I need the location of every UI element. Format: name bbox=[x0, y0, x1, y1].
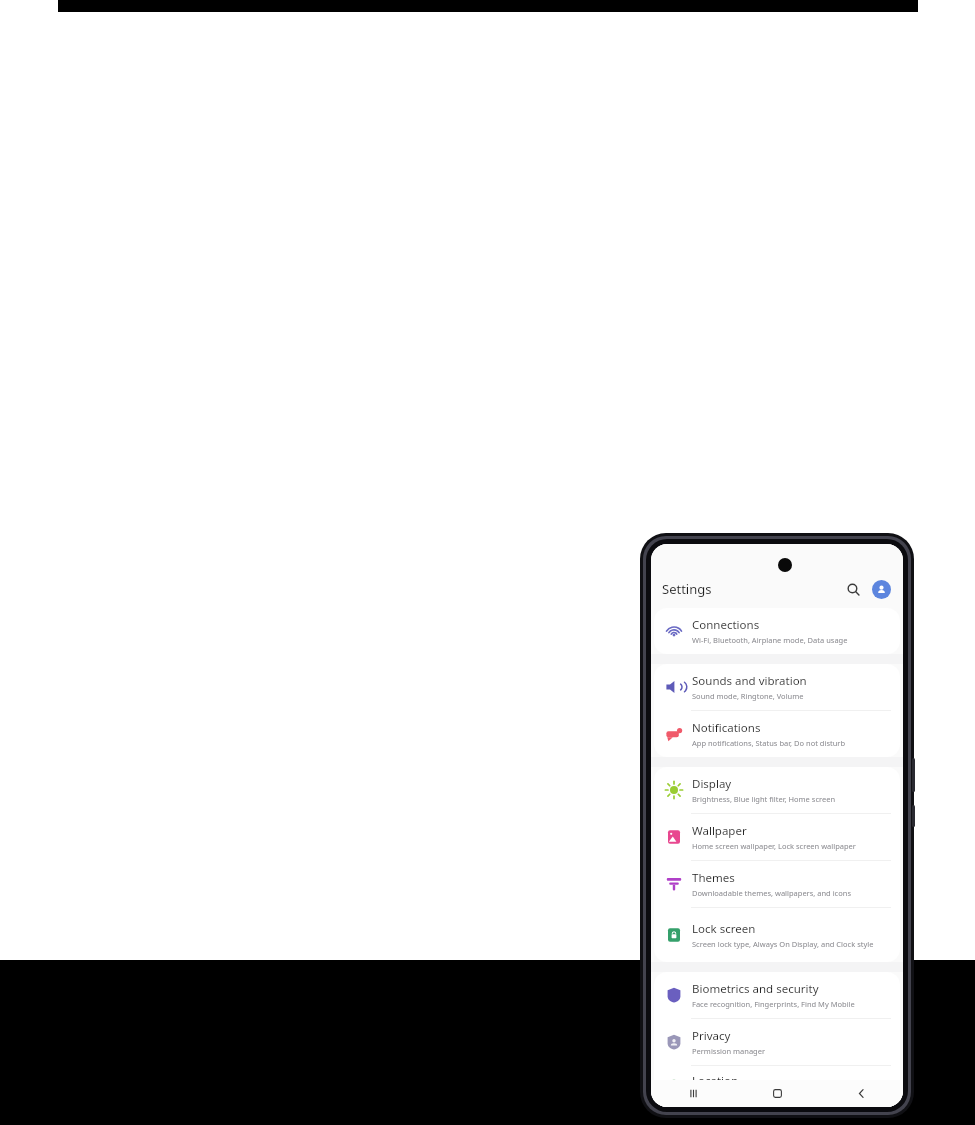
button[interactable]: Search bbox=[840, 576, 866, 602]
staticText: Screen lock type, Always On Display, and… bbox=[692, 939, 874, 949]
staticText: Themes bbox=[692, 870, 735, 886]
staticText: Settings bbox=[662, 580, 712, 598]
button[interactable]: Connections bbox=[654, 608, 900, 654]
button[interactable]: Back bbox=[819, 1080, 903, 1107]
staticText: Biometrics and security bbox=[692, 981, 819, 997]
staticText: Permission manager bbox=[692, 1046, 766, 1056]
button[interactable]: Themes bbox=[654, 861, 900, 907]
staticText: Wi-Fi, Bluetooth, Airplane mode, Data us… bbox=[692, 635, 848, 645]
staticText: Notifications bbox=[692, 720, 761, 736]
staticText: Brightness, Blue light filter, Home scre… bbox=[692, 794, 836, 804]
button[interactable]: Wallpaper bbox=[654, 814, 900, 860]
button[interactable]: Recents bbox=[651, 1080, 735, 1107]
staticText: Wallpaper bbox=[692, 823, 747, 839]
button[interactable]: Lock screen bbox=[654, 908, 900, 962]
staticText: Sound mode, Ringtone, Volume bbox=[692, 691, 804, 701]
button[interactable]: Biometrics and security bbox=[654, 972, 900, 1018]
staticText: App permissions, Location services bbox=[692, 1091, 815, 1101]
staticText: Privacy bbox=[692, 1028, 731, 1044]
staticText: Home screen wallpaper, Lock screen wallp… bbox=[692, 841, 856, 851]
staticText: Lock screen bbox=[692, 921, 756, 937]
staticText: Display bbox=[692, 776, 732, 792]
button[interactable]: Location bbox=[654, 1066, 900, 1107]
button[interactable]: Home bbox=[735, 1080, 819, 1107]
staticText: Location bbox=[692, 1073, 739, 1089]
button[interactable]: Display bbox=[654, 767, 900, 813]
staticText: App notifications, Status bar, Do not di… bbox=[692, 738, 846, 748]
staticText: Downloadable themes, wallpapers, and ico… bbox=[692, 888, 851, 898]
button[interactable]: Sounds and vibration bbox=[654, 664, 900, 710]
button[interactable]: Privacy bbox=[654, 1019, 900, 1065]
staticText: Sounds and vibration bbox=[692, 673, 807, 689]
button[interactable]: Notifications bbox=[654, 711, 900, 757]
staticText: Face recognition, Fingerprints, Find My … bbox=[692, 999, 855, 1009]
button[interactable]: Account bbox=[868, 576, 894, 602]
staticText: Connections bbox=[692, 617, 760, 633]
